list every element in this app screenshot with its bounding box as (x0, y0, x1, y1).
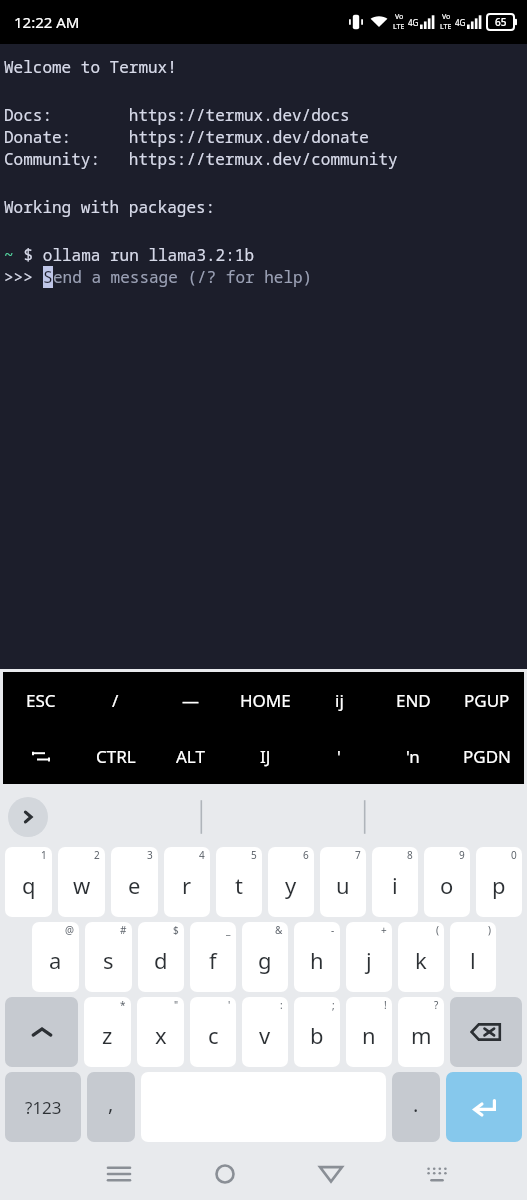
staticText: l (470, 945, 476, 975)
staticText: k (415, 945, 427, 975)
button[interactable]: " (137, 997, 184, 1067)
staticText: 7 (355, 848, 361, 862)
button[interactable]: : (242, 997, 288, 1067)
staticText: c (208, 1020, 219, 1050)
button[interactable]: 7 (320, 847, 366, 917)
staticText: 4G (408, 17, 419, 28)
button[interactable]: Expand suggestions (8, 797, 48, 837)
button[interactable]: Keyboard (384, 1148, 490, 1200)
staticText: ALT (176, 745, 205, 768)
staticText: * (120, 998, 126, 1012)
staticText: b (310, 1020, 324, 1050)
button[interactable]: . (392, 1072, 440, 1142)
staticText: n (362, 1020, 376, 1050)
staticText: 4 (199, 848, 205, 862)
button[interactable]: 5 (216, 847, 262, 917)
staticText: ESC (26, 689, 56, 712)
staticText: CTRL (96, 745, 136, 768)
staticText: ( (436, 923, 439, 937)
button[interactable]: ESC (3, 672, 78, 728)
button[interactable]: Home (172, 1148, 278, 1200)
staticText: 12:22 AM (14, 12, 80, 32)
button[interactable]: ?123 (5, 1072, 81, 1142)
staticText: END (396, 689, 431, 712)
staticText: m (411, 1020, 432, 1050)
staticText: r (182, 870, 192, 900)
button[interactable]: PGDN (450, 728, 524, 784)
button[interactable]: ) (450, 922, 496, 992)
button[interactable]: Enter (446, 1072, 522, 1142)
staticText: h (310, 945, 324, 975)
button[interactable]: ' (190, 997, 236, 1067)
staticText: s (103, 945, 114, 975)
button[interactable]: ! (346, 997, 392, 1067)
button[interactable]: , (87, 1072, 135, 1142)
button[interactable]: Shift (5, 997, 78, 1067)
button[interactable]: 4 (164, 847, 210, 917)
staticText: 2 (94, 848, 100, 862)
button[interactable]: & (242, 922, 288, 992)
button[interactable]: END (376, 672, 450, 728)
staticText: 9 (459, 848, 465, 862)
staticText: u (336, 870, 350, 900)
button[interactable]: PGUP (450, 672, 524, 728)
staticText: S (43, 266, 53, 288)
staticText: d (154, 945, 168, 975)
button[interactable]: 0 (476, 847, 522, 917)
button[interactable]: 2 (58, 847, 105, 917)
button[interactable]: ; (294, 997, 340, 1067)
staticText: _ (226, 923, 231, 937)
staticText: $ ollama run llama3.2:1b (14, 244, 255, 266)
staticText: >>> (4, 266, 43, 288)
button[interactable]: Back (278, 1148, 384, 1200)
staticText: end a message (/? for help) (53, 266, 313, 288)
button[interactable]: / (78, 672, 153, 728)
button[interactable]: - (294, 922, 340, 992)
button[interactable]: $ (138, 922, 184, 992)
button[interactable]: + (346, 922, 392, 992)
staticText: 1 (41, 848, 47, 862)
staticText: Docs: https://termux.dev/docs (4, 104, 350, 126)
button[interactable]: * (84, 997, 131, 1067)
button[interactable]: 3 (111, 847, 158, 917)
button[interactable]: CTRL (78, 728, 153, 784)
button[interactable]: 6 (268, 847, 314, 917)
button[interactable]: ALT (153, 728, 228, 784)
staticText: ! (384, 998, 387, 1012)
staticText: 3 (147, 848, 153, 862)
staticText: PGUP (464, 689, 510, 712)
button[interactable]: ' (302, 728, 376, 784)
button[interactable]: 8 (372, 847, 418, 917)
staticText: Welcome to Termux! (4, 56, 177, 78)
button[interactable]: _ (190, 922, 236, 992)
staticText: - (331, 923, 335, 937)
staticText: v (259, 1020, 271, 1050)
button[interactable]: Menu (65, 1148, 172, 1200)
staticText: z (102, 1020, 113, 1050)
button[interactable]: 1 (5, 847, 52, 917)
button[interactable]: IJ (228, 728, 302, 784)
button[interactable]: # (85, 922, 132, 992)
staticText: : (280, 998, 283, 1012)
staticText: a (49, 945, 62, 975)
button[interactable]: Backspace (450, 997, 522, 1067)
button[interactable]: ij (302, 672, 376, 728)
staticText: Working with packages: (4, 196, 216, 218)
button[interactable]: — (153, 672, 228, 728)
button[interactable]: 9 (424, 847, 470, 917)
staticText: Donate: https://termux.dev/donate (4, 126, 369, 148)
button[interactable]: Tab (3, 728, 78, 784)
button[interactable]: 'n (376, 728, 450, 784)
button[interactable]: ? (398, 997, 444, 1067)
staticText: 0 (511, 848, 517, 862)
button[interactable]: ( (398, 922, 444, 992)
button[interactable]: HOME (228, 672, 302, 728)
staticText: ' (228, 998, 231, 1012)
staticText: Community: https://termux.dev/community (4, 148, 398, 170)
staticText: ~ (4, 244, 14, 266)
staticText: g (258, 945, 272, 975)
staticText: $ (173, 923, 179, 937)
button[interactable]: @ (32, 922, 79, 992)
staticText: i (392, 870, 398, 900)
